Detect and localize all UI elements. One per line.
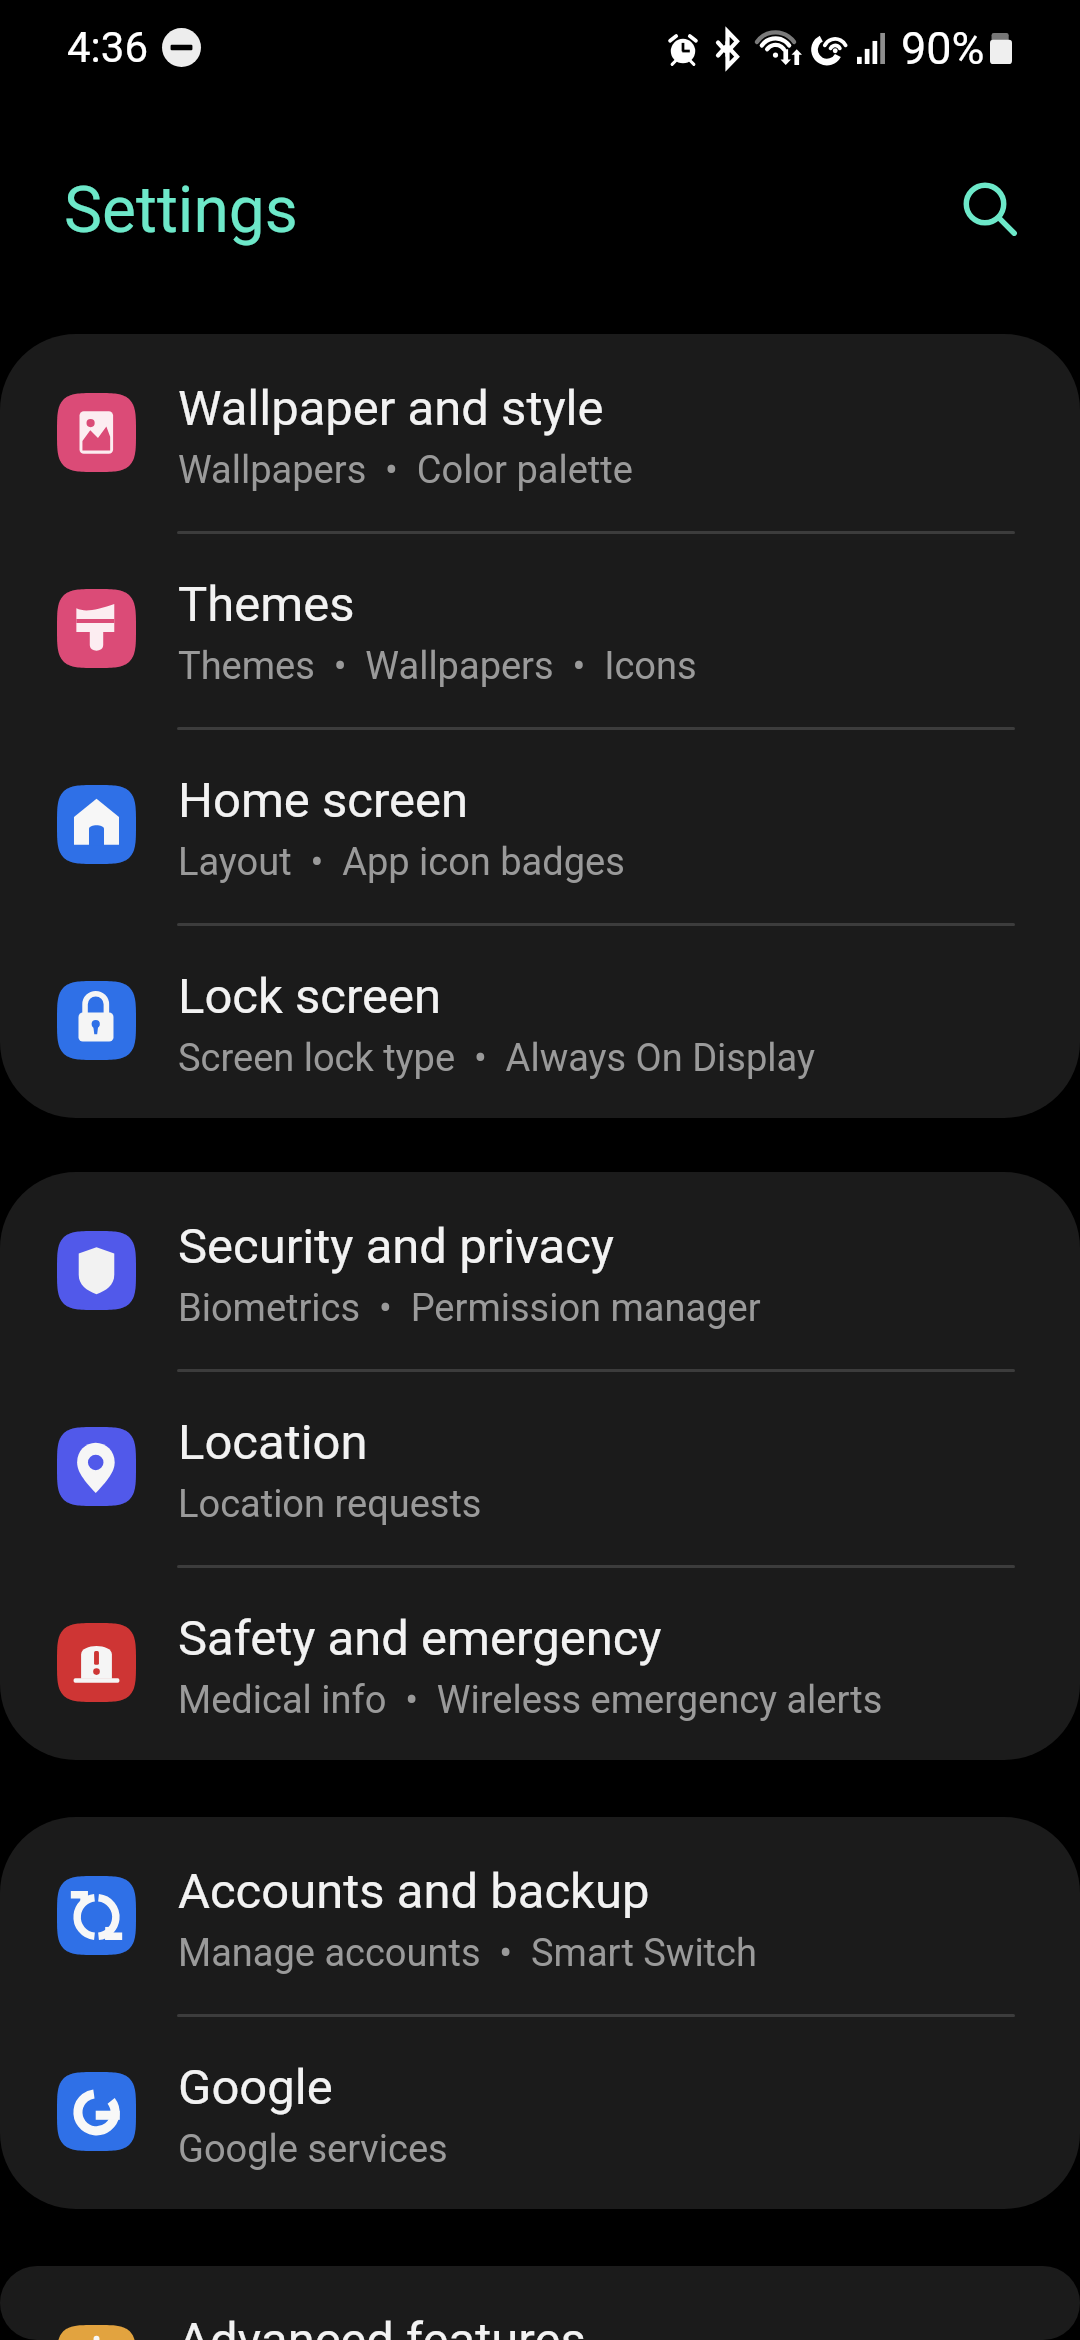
staticText: Google [178, 2059, 333, 2116]
staticText: Themes • Wallpapers • Icons [178, 644, 697, 689]
staticText: Layout • App icon badges [178, 840, 625, 885]
staticText: Settings [64, 173, 298, 248]
staticText: 90% [901, 22, 985, 75]
staticText: Advanced features [178, 2312, 586, 2340]
staticText: Screen lock type • Always On Display [178, 1036, 815, 1081]
staticText: Location requests [178, 1482, 482, 1527]
staticText: Lock screen [178, 968, 442, 1025]
staticText: Biometrics • Permission manager [178, 1286, 761, 1331]
staticText: Accounts and backup [178, 1863, 650, 1920]
staticText: Medical info • Wireless emergency alerts [178, 1678, 883, 1723]
staticText: Wallpaper and style [178, 380, 604, 437]
button[interactable]: Accounts and backup [0, 1817, 1080, 2013]
button[interactable]: Search [937, 156, 1033, 252]
staticText: Themes [178, 576, 355, 633]
button[interactable]: Security and privacy [0, 1172, 1080, 1368]
button[interactable]: Lock screen [0, 922, 1080, 1118]
button[interactable]: Wallpaper and style [0, 334, 1080, 530]
button[interactable]: Google [0, 2013, 1080, 2209]
staticText: Location [178, 1414, 368, 1471]
button[interactable]: Home screen [0, 726, 1080, 922]
button[interactable]: Safety and emergency [0, 1564, 1080, 1760]
button[interactable]: Themes [0, 530, 1080, 726]
staticText: Home screen [178, 772, 469, 829]
staticText: Security and privacy [178, 1218, 615, 1275]
staticText: Wallpapers • Color palette [178, 448, 633, 493]
button[interactable]: Advanced features [0, 2266, 1080, 2340]
staticText: 4:36 [67, 23, 148, 72]
staticText: Google services [178, 2127, 448, 2172]
staticText: Safety and emergency [178, 1610, 662, 1667]
staticText: Manage accounts • Smart Switch [178, 1931, 757, 1976]
button[interactable]: Location [0, 1368, 1080, 1564]
